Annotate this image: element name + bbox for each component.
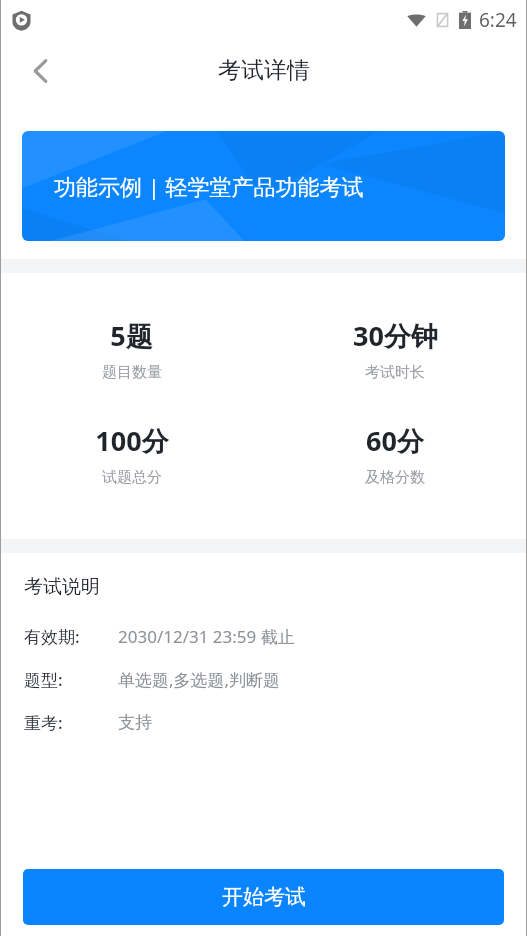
staticText: 5题 <box>110 317 153 354</box>
staticText: 题型: <box>24 668 63 691</box>
staticText: 试题总分 <box>102 468 162 487</box>
button[interactable]: 功能示例 | 轻学堂产品功能考试 <box>22 131 505 241</box>
staticText: 100分 <box>95 422 169 459</box>
staticText: 考试说明 <box>24 575 100 599</box>
staticText: 60分 <box>366 422 424 459</box>
staticText: 功能示例 | 轻学堂产品功能考试 <box>54 171 364 201</box>
staticText: 考试时长 <box>365 363 425 382</box>
staticText: 考试详情 <box>218 56 310 85</box>
button[interactable]: Back <box>16 47 64 95</box>
staticText: 30分钟 <box>353 317 438 354</box>
staticText: 支持 <box>118 712 152 733</box>
staticText: 有效期: <box>24 625 80 648</box>
staticText: 2030/12/31 23:59 截止 <box>118 625 295 648</box>
staticText: 重考: <box>24 711 63 734</box>
staticText: 题目数量 <box>102 363 162 382</box>
staticText: 单选题,多选题,判断题 <box>118 668 281 691</box>
staticText: 开始考试 <box>222 884 306 910</box>
staticText: 6:24 <box>479 7 517 33</box>
staticText: 及格分数 <box>365 468 425 487</box>
button[interactable]: 开始考试 <box>23 869 504 925</box>
